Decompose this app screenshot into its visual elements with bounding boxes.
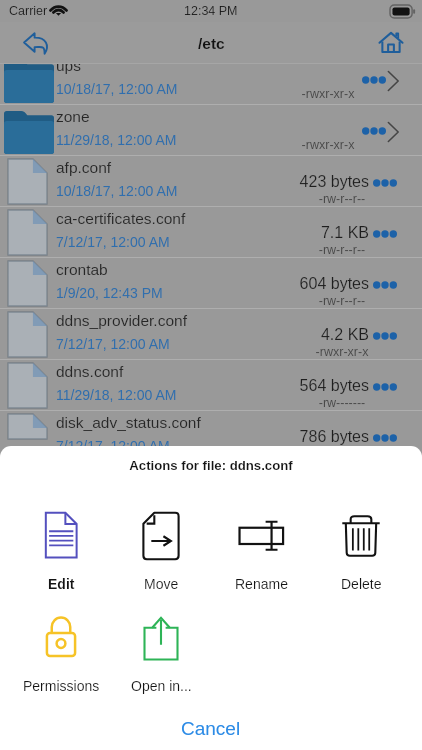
staticText: -rw-r--r--: [282, 294, 402, 308]
staticText: -rw-r--r--: [282, 192, 402, 206]
button[interactable]: More actions for crontab: [370, 273, 400, 297]
button[interactable]: ups: [0, 64, 422, 104]
button[interactable]: More actions for ca-certificates.conf: [370, 222, 400, 246]
staticText: Actions for file: ddns.conf: [0, 458, 422, 473]
staticText: Edit: [48, 576, 75, 592]
staticText: 11/29/18, 12:00 AM: [56, 387, 177, 403]
staticText: 7.1 KB: [180, 224, 369, 242]
staticText: 12:34 PM: [184, 4, 238, 18]
staticText: -rw-------: [282, 396, 402, 410]
staticText: 7/12/17, 12:00 AM: [56, 234, 170, 250]
staticText: ups: [56, 64, 81, 74]
button[interactable]: Permissions: [11, 613, 111, 693]
staticText: -rwxr-xr-x: [268, 138, 388, 152]
staticText: 1/9/20, 12:43 PM: [56, 285, 163, 301]
staticText: disk_adv_status.conf: [56, 414, 201, 431]
button[interactable]: Rename: [211, 511, 311, 591]
button[interactable]: Cancel: [0, 711, 422, 745]
button[interactable]: disk_adv_status.conf: [0, 411, 422, 436]
staticText: /etc: [198, 35, 225, 52]
staticText: -rwxr-xr-x: [268, 87, 388, 101]
button[interactable]: zone: [0, 105, 422, 155]
button[interactable]: Delete: [311, 511, 411, 591]
staticText: afp.conf: [56, 159, 112, 176]
button[interactable]: More actions for ddns.conf: [370, 375, 400, 399]
button[interactable]: More actions for ups: [360, 68, 388, 92]
staticText: 11/29/18, 12:00 AM: [56, 132, 177, 148]
staticText: 4.2 KB: [180, 326, 369, 344]
staticText: 7/12/17, 12:00 AM: [56, 438, 170, 446]
staticText: Move: [144, 576, 179, 592]
staticText: 10/18/17, 12:00 AM: [56, 81, 178, 97]
button[interactable]: Back: [13, 22, 59, 64]
staticText: Open in...: [131, 678, 192, 694]
button[interactable]: Open in...: [111, 613, 211, 693]
staticText: Cancel: [181, 718, 241, 739]
staticText: -rw-r--r--: [282, 243, 402, 257]
staticText: ca-certificates.conf: [56, 210, 186, 227]
staticText: Carrier: [9, 4, 48, 18]
button[interactable]: ca-certificates.conf: [0, 207, 422, 257]
staticText: 604 bytes: [180, 275, 369, 293]
staticText: 423 bytes: [180, 173, 369, 191]
staticText: Delete: [341, 576, 382, 592]
staticText: 7/12/17, 12:00 AM: [56, 336, 170, 352]
button[interactable]: ddns.conf: [0, 360, 422, 410]
button[interactable]: Home: [369, 22, 413, 64]
staticText: 10/18/17, 12:00 AM: [56, 183, 178, 199]
staticText: ddns_provider.conf: [56, 312, 187, 329]
button[interactable]: Edit: [11, 511, 111, 591]
staticText: -rwxr-xr-x: [282, 345, 402, 359]
staticText: Permissions: [23, 678, 100, 694]
staticText: ddns.conf: [56, 363, 124, 380]
button[interactable]: Move: [111, 511, 211, 591]
button[interactable]: ddns_provider.conf: [0, 309, 422, 359]
button[interactable]: More actions for afp.conf: [370, 171, 400, 195]
button[interactable]: crontab: [0, 258, 422, 308]
button[interactable]: More actions for zone: [360, 119, 388, 143]
button[interactable]: More actions for disk_adv_status.conf: [370, 426, 400, 446]
staticText: 564 bytes: [180, 377, 369, 395]
button[interactable]: More actions for ddns_provider.conf: [370, 324, 400, 348]
staticText: crontab: [56, 261, 108, 278]
staticText: zone: [56, 108, 90, 125]
staticText: 786 bytes: [180, 428, 369, 446]
button[interactable]: afp.conf: [0, 156, 422, 206]
staticText: Rename: [235, 576, 288, 592]
